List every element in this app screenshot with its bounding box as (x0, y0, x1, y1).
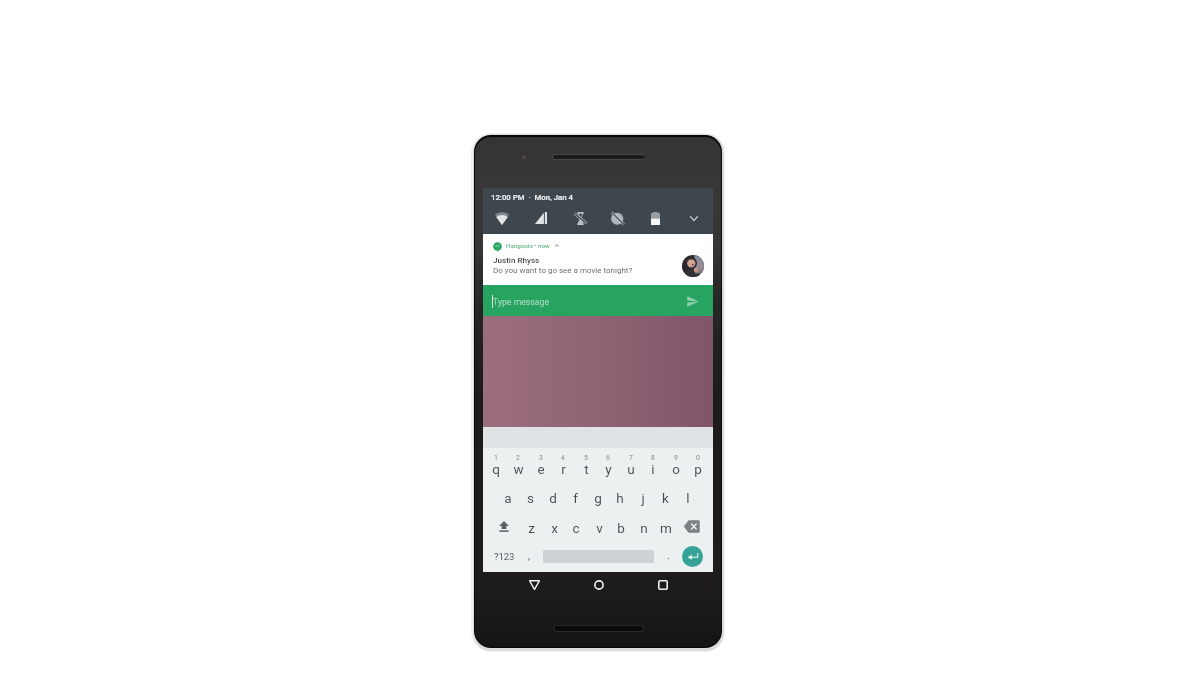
other: Signal (535, 212, 547, 224)
button[interactable]: Enter (682, 546, 703, 567)
staticText: Hangouts • now (506, 242, 550, 249)
button[interactable]: Signal (528, 207, 554, 229)
button[interactable] (609, 481, 631, 511)
button[interactable] (654, 481, 676, 511)
staticText: p (694, 461, 702, 477)
button[interactable]: ?123 (487, 541, 521, 572)
staticText: Justin Rhyss (493, 255, 540, 264)
staticText: v (596, 520, 603, 536)
button[interactable] (530, 450, 552, 481)
button[interactable] (664, 450, 686, 481)
staticText: o (672, 461, 680, 477)
button[interactable] (619, 450, 641, 481)
staticText: k (662, 490, 669, 506)
button[interactable] (588, 511, 610, 541)
staticText: 9 (674, 454, 678, 462)
button[interactable] (597, 450, 619, 481)
staticText: t (584, 461, 589, 477)
button[interactable] (485, 450, 507, 481)
staticText: . (667, 549, 670, 561)
button[interactable]: Shift (488, 511, 520, 541)
button[interactable] (497, 481, 519, 511)
staticText: b (617, 520, 625, 536)
button[interactable]: . (659, 541, 677, 572)
button[interactable] (687, 450, 709, 481)
staticText: 0 (696, 454, 700, 462)
button[interactable]: Alarm off (567, 207, 593, 229)
staticText: 2 (516, 454, 520, 462)
staticText: u (627, 461, 635, 477)
button[interactable] (542, 481, 564, 511)
button[interactable] (575, 450, 597, 481)
button[interactable] (642, 450, 664, 481)
staticText: j (641, 490, 645, 506)
button[interactable] (564, 481, 586, 511)
other: Expand quick settings (690, 216, 698, 221)
other: Sync disabled (611, 212, 624, 225)
staticText: s (527, 490, 534, 506)
button[interactable] (507, 450, 529, 481)
button[interactable] (631, 481, 653, 511)
staticText: 7 (629, 454, 633, 462)
button[interactable]: Back (517, 572, 551, 598)
staticText: x (551, 520, 558, 536)
other: Battery (651, 212, 660, 225)
button[interactable]: Hangouts • now (483, 234, 713, 285)
button[interactable] (610, 511, 632, 541)
staticText: e (537, 461, 545, 477)
staticText: n (640, 520, 648, 536)
staticText: h (616, 490, 624, 506)
staticText: 8 (651, 454, 655, 462)
staticText: 4 (561, 454, 565, 462)
staticText: 12:00 PM · Mon, Jan 4 (491, 193, 574, 202)
staticText: 5 (584, 454, 588, 462)
staticText: g (594, 490, 602, 506)
staticText: a (504, 490, 512, 506)
staticText: w (513, 461, 524, 477)
staticText: z (528, 520, 535, 536)
button[interactable]: Send (682, 290, 704, 312)
button[interactable]: Backspace (676, 511, 708, 541)
other: Alarm off (574, 212, 587, 225)
staticText: ?123 (494, 551, 515, 562)
staticText: d (549, 490, 557, 506)
staticText: Type message (493, 297, 550, 307)
staticText: Do you want to go see a movie tonight? (493, 266, 633, 275)
button[interactable]: Battery (642, 207, 668, 229)
staticText: 3 (539, 454, 543, 462)
button[interactable] (543, 511, 565, 541)
staticText: r (561, 461, 566, 477)
staticText: f (573, 490, 578, 506)
button[interactable]: Wi-Fi (489, 207, 515, 229)
staticText: y (605, 461, 612, 477)
staticText: 6 (606, 454, 610, 462)
button[interactable]: Home (582, 572, 616, 598)
staticText: m (660, 520, 672, 536)
button[interactable] (552, 450, 574, 481)
button[interactable]: , (521, 541, 538, 572)
button[interactable]: Sync disabled (604, 207, 630, 229)
staticText: q (492, 461, 500, 477)
button[interactable] (519, 481, 541, 511)
button[interactable]: Recents (646, 572, 680, 598)
staticText: l (686, 490, 690, 506)
button[interactable]: Type message (483, 285, 713, 316)
button[interactable]: Expand quick settings (681, 207, 707, 229)
staticText: c (572, 520, 580, 536)
button[interactable] (565, 511, 587, 541)
other: Wi-Fi (495, 212, 509, 225)
button[interactable] (632, 511, 654, 541)
button[interactable] (520, 511, 542, 541)
staticText: i (651, 461, 655, 477)
button[interactable] (655, 511, 677, 541)
button[interactable] (676, 481, 698, 511)
button[interactable] (587, 481, 609, 511)
staticText: 1 (494, 454, 498, 462)
staticText: , (528, 549, 531, 561)
